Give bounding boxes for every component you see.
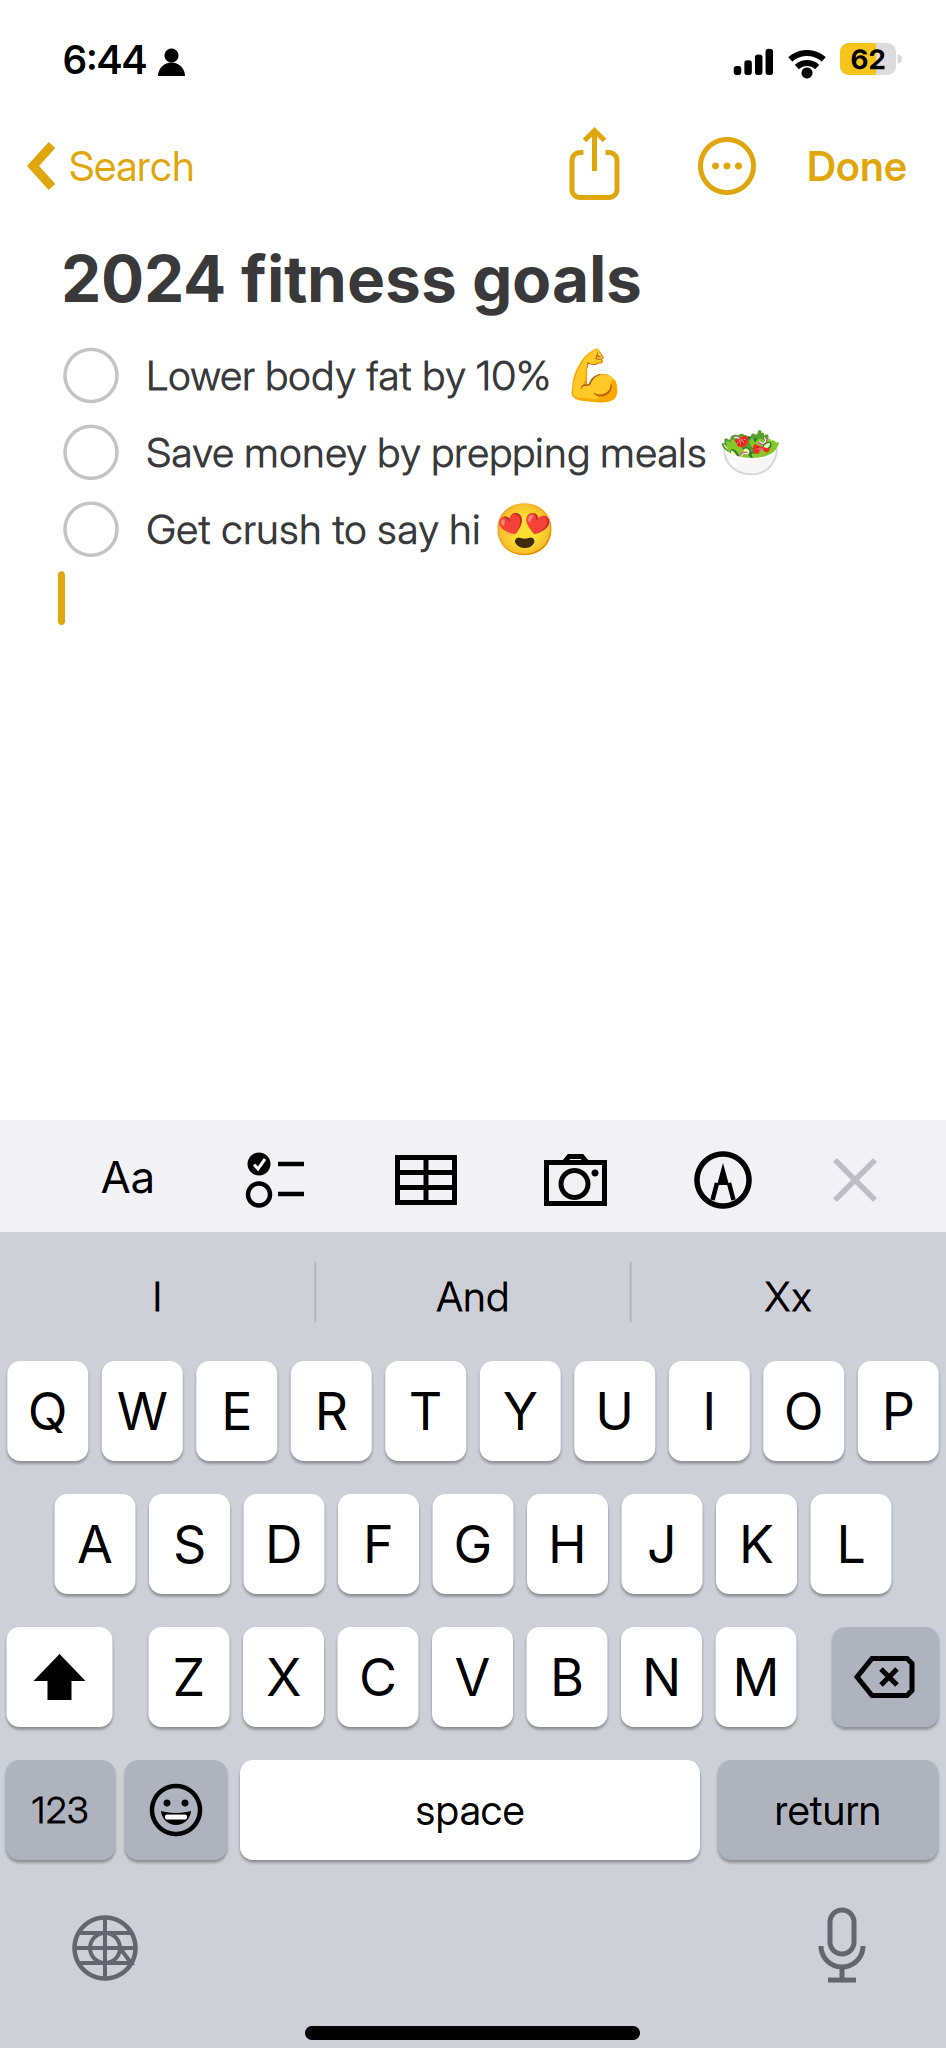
staticText: 62 bbox=[850, 42, 885, 75]
staticText: Z bbox=[172, 1646, 205, 1708]
staticText: 123 bbox=[31, 1788, 89, 1832]
staticText: F bbox=[363, 1513, 394, 1575]
staticText: Q bbox=[28, 1380, 68, 1442]
button[interactable]: E bbox=[196, 1361, 277, 1461]
staticText: J bbox=[647, 1513, 677, 1575]
button[interactable]: return bbox=[718, 1760, 938, 1860]
button[interactable]: T bbox=[385, 1361, 466, 1461]
staticText: X bbox=[266, 1646, 301, 1708]
button[interactable]: Z bbox=[148, 1627, 229, 1727]
staticText: H bbox=[548, 1513, 587, 1575]
staticText: A bbox=[77, 1513, 113, 1575]
button[interactable]: Table bbox=[395, 1155, 457, 1205]
button[interactable]: D bbox=[243, 1494, 324, 1594]
staticText: G bbox=[453, 1513, 492, 1575]
staticText: E bbox=[221, 1380, 252, 1442]
button[interactable]: More bbox=[698, 137, 756, 195]
staticText: Search bbox=[69, 142, 195, 190]
button[interactable]: S bbox=[149, 1494, 230, 1594]
button[interactable]: Markup bbox=[697, 1154, 749, 1206]
staticText: Get crush to say hi bbox=[146, 505, 481, 554]
button[interactable]: Camera bbox=[544, 1154, 607, 1206]
button[interactable]: B bbox=[526, 1627, 607, 1727]
button[interactable]: Numbers bbox=[6, 1760, 115, 1860]
staticText: Y bbox=[503, 1380, 538, 1442]
staticText: 2024 fitness goals bbox=[61, 241, 642, 316]
button[interactable]: R bbox=[291, 1361, 372, 1461]
staticText: 💪 bbox=[563, 346, 626, 404]
button[interactable]: X bbox=[243, 1627, 324, 1727]
button[interactable]: W bbox=[102, 1361, 183, 1461]
staticText: L bbox=[836, 1513, 865, 1575]
button[interactable]: G bbox=[432, 1494, 513, 1594]
button[interactable]: O bbox=[763, 1361, 844, 1461]
staticText: V bbox=[454, 1646, 490, 1708]
staticText: 6:44 bbox=[63, 37, 147, 83]
staticText: N bbox=[642, 1646, 681, 1708]
button[interactable]: I bbox=[0, 1232, 315, 1361]
button[interactable]: space bbox=[240, 1760, 700, 1860]
button[interactable]: Done bbox=[807, 136, 907, 196]
staticText: S bbox=[173, 1513, 206, 1575]
button[interactable]: Delete bbox=[832, 1627, 938, 1727]
button[interactable]: Xx bbox=[630, 1232, 946, 1361]
staticText: Xx bbox=[764, 1272, 812, 1321]
button[interactable]: C bbox=[337, 1627, 418, 1727]
staticText: 🥗 bbox=[719, 423, 782, 481]
staticText: T bbox=[409, 1380, 443, 1442]
button[interactable]: Dismiss keyboard bbox=[833, 1158, 877, 1202]
button[interactable]: Save money by prepping meals bbox=[65, 423, 782, 481]
staticText: U bbox=[595, 1380, 634, 1442]
button[interactable]: Lower body fat by 10% bbox=[65, 346, 626, 404]
button[interactable]: L bbox=[810, 1494, 891, 1594]
button[interactable]: Format bbox=[100, 1151, 155, 1203]
staticText: 😍 bbox=[493, 500, 556, 558]
staticText: K bbox=[739, 1513, 774, 1575]
staticText: return bbox=[774, 1786, 881, 1834]
button[interactable]: Q bbox=[7, 1361, 88, 1461]
button[interactable]: Checklist bbox=[246, 1152, 306, 1206]
button[interactable]: J bbox=[621, 1494, 702, 1594]
staticText: P bbox=[882, 1380, 915, 1442]
staticText: I bbox=[152, 1272, 162, 1321]
button[interactable]: Shift bbox=[6, 1627, 112, 1727]
button[interactable]: Emoji bbox=[125, 1760, 227, 1860]
button[interactable]: Search bbox=[31, 136, 195, 196]
staticText: Lower body fat by 10% bbox=[146, 351, 551, 400]
staticText: And bbox=[436, 1272, 509, 1321]
button[interactable]: H bbox=[527, 1494, 608, 1594]
staticText: M bbox=[732, 1646, 779, 1708]
staticText: W bbox=[117, 1380, 168, 1442]
staticText: Done bbox=[807, 142, 907, 190]
button[interactable]: F bbox=[338, 1494, 419, 1594]
button[interactable]: P bbox=[858, 1361, 939, 1461]
button[interactable]: Dictate bbox=[813, 1908, 871, 1984]
button[interactable]: Get crush to say hi bbox=[65, 500, 556, 558]
button[interactable]: U bbox=[574, 1361, 655, 1461]
button[interactable]: Next keyboard bbox=[74, 1917, 136, 1979]
button[interactable]: I bbox=[669, 1361, 750, 1461]
staticText: I bbox=[702, 1380, 716, 1442]
staticText: D bbox=[265, 1513, 303, 1575]
button[interactable]: Y bbox=[480, 1361, 561, 1461]
staticText: B bbox=[550, 1646, 584, 1708]
button[interactable]: V bbox=[432, 1627, 513, 1727]
staticText: Aa bbox=[100, 1151, 155, 1203]
button[interactable]: N bbox=[621, 1627, 702, 1727]
staticText: O bbox=[784, 1380, 824, 1442]
button[interactable]: And bbox=[315, 1232, 630, 1361]
button[interactable]: K bbox=[716, 1494, 797, 1594]
staticText: R bbox=[315, 1380, 348, 1442]
button[interactable]: A bbox=[54, 1494, 135, 1594]
button[interactable]: Share bbox=[569, 127, 619, 199]
staticText: C bbox=[359, 1646, 397, 1708]
staticText: space bbox=[415, 1786, 524, 1834]
button[interactable]: M bbox=[715, 1627, 796, 1727]
staticText: Save money by prepping meals bbox=[146, 428, 707, 477]
